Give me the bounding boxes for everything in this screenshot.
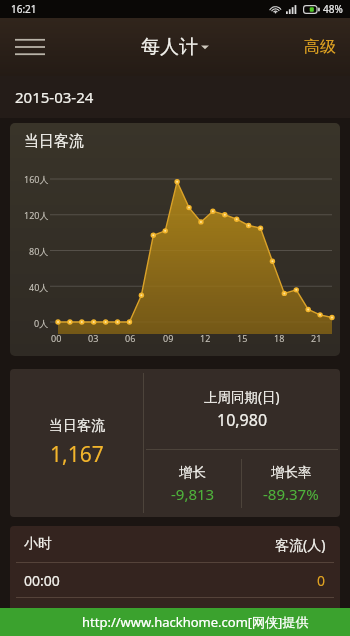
staticText: 增长 bbox=[179, 464, 206, 481]
button[interactable]: 增长 bbox=[144, 450, 241, 517]
staticText: 1,167 bbox=[50, 440, 104, 469]
staticText: 增长率 bbox=[271, 464, 312, 481]
button[interactable]: 每人计 bbox=[135, 29, 215, 65]
button[interactable]: 增长率 bbox=[242, 450, 340, 517]
staticText: 每人计 bbox=[141, 35, 198, 59]
button[interactable]: 2015-03-24 bbox=[0, 76, 350, 118]
staticText: 上周同期(日) bbox=[204, 388, 280, 406]
staticText: 00:00 bbox=[24, 571, 60, 590]
staticText: 80人 bbox=[29, 245, 49, 257]
staticText: 客流(人) bbox=[275, 535, 326, 554]
button[interactable]: 00:00 bbox=[10, 563, 340, 597]
staticText: 15 bbox=[237, 332, 248, 344]
staticText: -9,813 bbox=[171, 484, 215, 504]
staticText: 0 bbox=[317, 571, 326, 590]
button[interactable]: 高级 bbox=[290, 25, 350, 69]
staticText: 21 bbox=[311, 332, 322, 344]
staticText: 当日客流 bbox=[24, 132, 84, 151]
staticText: 120人 bbox=[24, 209, 49, 221]
staticText: 00 bbox=[51, 332, 62, 344]
staticText: 0人 bbox=[34, 317, 49, 329]
staticText: -89.37% bbox=[263, 484, 319, 504]
staticText: 12 bbox=[200, 332, 211, 344]
staticText: 小时 bbox=[24, 535, 52, 553]
staticText: 当日客流 bbox=[49, 417, 105, 435]
staticText: 高级 bbox=[304, 37, 336, 57]
button[interactable]: 当日客流 bbox=[10, 369, 143, 517]
button[interactable]: Menu bbox=[12, 29, 48, 65]
staticText: 09 bbox=[163, 332, 174, 344]
staticText: 2015-03-24 bbox=[15, 87, 94, 107]
staticText: 160人 bbox=[24, 173, 49, 185]
button[interactable]: 上周同期(日) bbox=[144, 369, 340, 449]
staticText: 16:21 bbox=[11, 2, 37, 16]
staticText: 18 bbox=[274, 332, 285, 344]
button[interactable]: 小时 bbox=[10, 526, 340, 562]
staticText: 10,980 bbox=[217, 409, 268, 431]
staticText: http://www.hackhome.com[网侠]提供 bbox=[82, 613, 309, 631]
staticText: 03 bbox=[88, 332, 99, 344]
staticText: 40人 bbox=[29, 281, 49, 293]
button[interactable]: 当日客流 bbox=[10, 123, 340, 356]
staticText: 06 bbox=[125, 332, 136, 344]
staticText: 48% bbox=[323, 2, 343, 16]
